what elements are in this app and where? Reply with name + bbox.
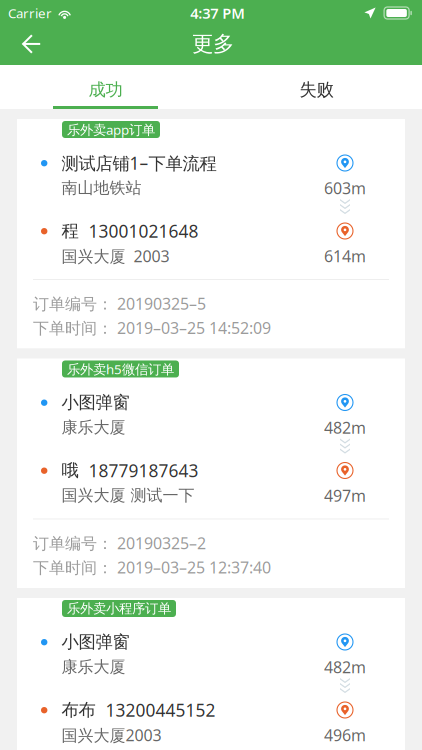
staticText: 国兴大厦 测试一下 [61, 486, 194, 505]
staticText: 哦 [61, 460, 78, 481]
button[interactable]: 失败 [211, 65, 422, 109]
staticText: 603m [324, 177, 366, 199]
staticText: 小图弹窗 [61, 392, 129, 413]
button[interactable]: 乐外卖h5微信订单 [0, 358, 422, 588]
staticText: 乐外卖h5微信订单 [67, 360, 174, 378]
staticText: 订单编号： 20190325–5 [33, 293, 206, 314]
button[interactable]: 乐外卖app订单 [0, 119, 422, 348]
staticText: 13001021648 [88, 219, 198, 242]
staticText: 康乐大厦 [61, 418, 125, 437]
staticText: 13200445152 [105, 698, 215, 721]
staticText: 496m [324, 724, 366, 746]
staticText: 康乐大厦 [61, 657, 125, 677]
staticText: 订单编号： 20190325–2 [33, 532, 206, 554]
staticText: 测试店铺1–下单流程 [61, 151, 216, 174]
staticText: 乐外卖app订单 [67, 121, 155, 138]
staticText: 布布 [61, 699, 95, 721]
staticText: 南山地铁站 [61, 178, 141, 198]
staticText: 国兴大厦2003 [61, 724, 161, 746]
button[interactable]: 成功 [0, 65, 211, 109]
staticText: 614m [324, 245, 366, 267]
staticText: 小图弹窗 [61, 631, 129, 653]
staticText: 18779187643 [88, 459, 198, 482]
staticText: 下单时间： 2019–03–25 14:52:09 [33, 317, 271, 338]
staticText: 成功 [88, 79, 122, 100]
staticText: Carrier [8, 4, 52, 22]
staticText: 国兴大厦 2003 [61, 245, 169, 267]
staticText: 497m [324, 485, 366, 506]
staticText: 482m [324, 656, 366, 678]
staticText: 程 [61, 220, 78, 242]
staticText: 482m [324, 417, 366, 438]
staticText: 下单时间： 2019–03–25 12:37:40 [33, 557, 271, 578]
staticText: 失败 [299, 79, 333, 100]
staticText: 更多 [192, 31, 234, 57]
button[interactable]: 乐外卖小程序订单 [0, 598, 422, 750]
button[interactable]: Back [0, 25, 50, 62]
staticText: 乐外卖小程序订单 [67, 600, 171, 617]
staticText: 4:37 PM [190, 3, 245, 23]
